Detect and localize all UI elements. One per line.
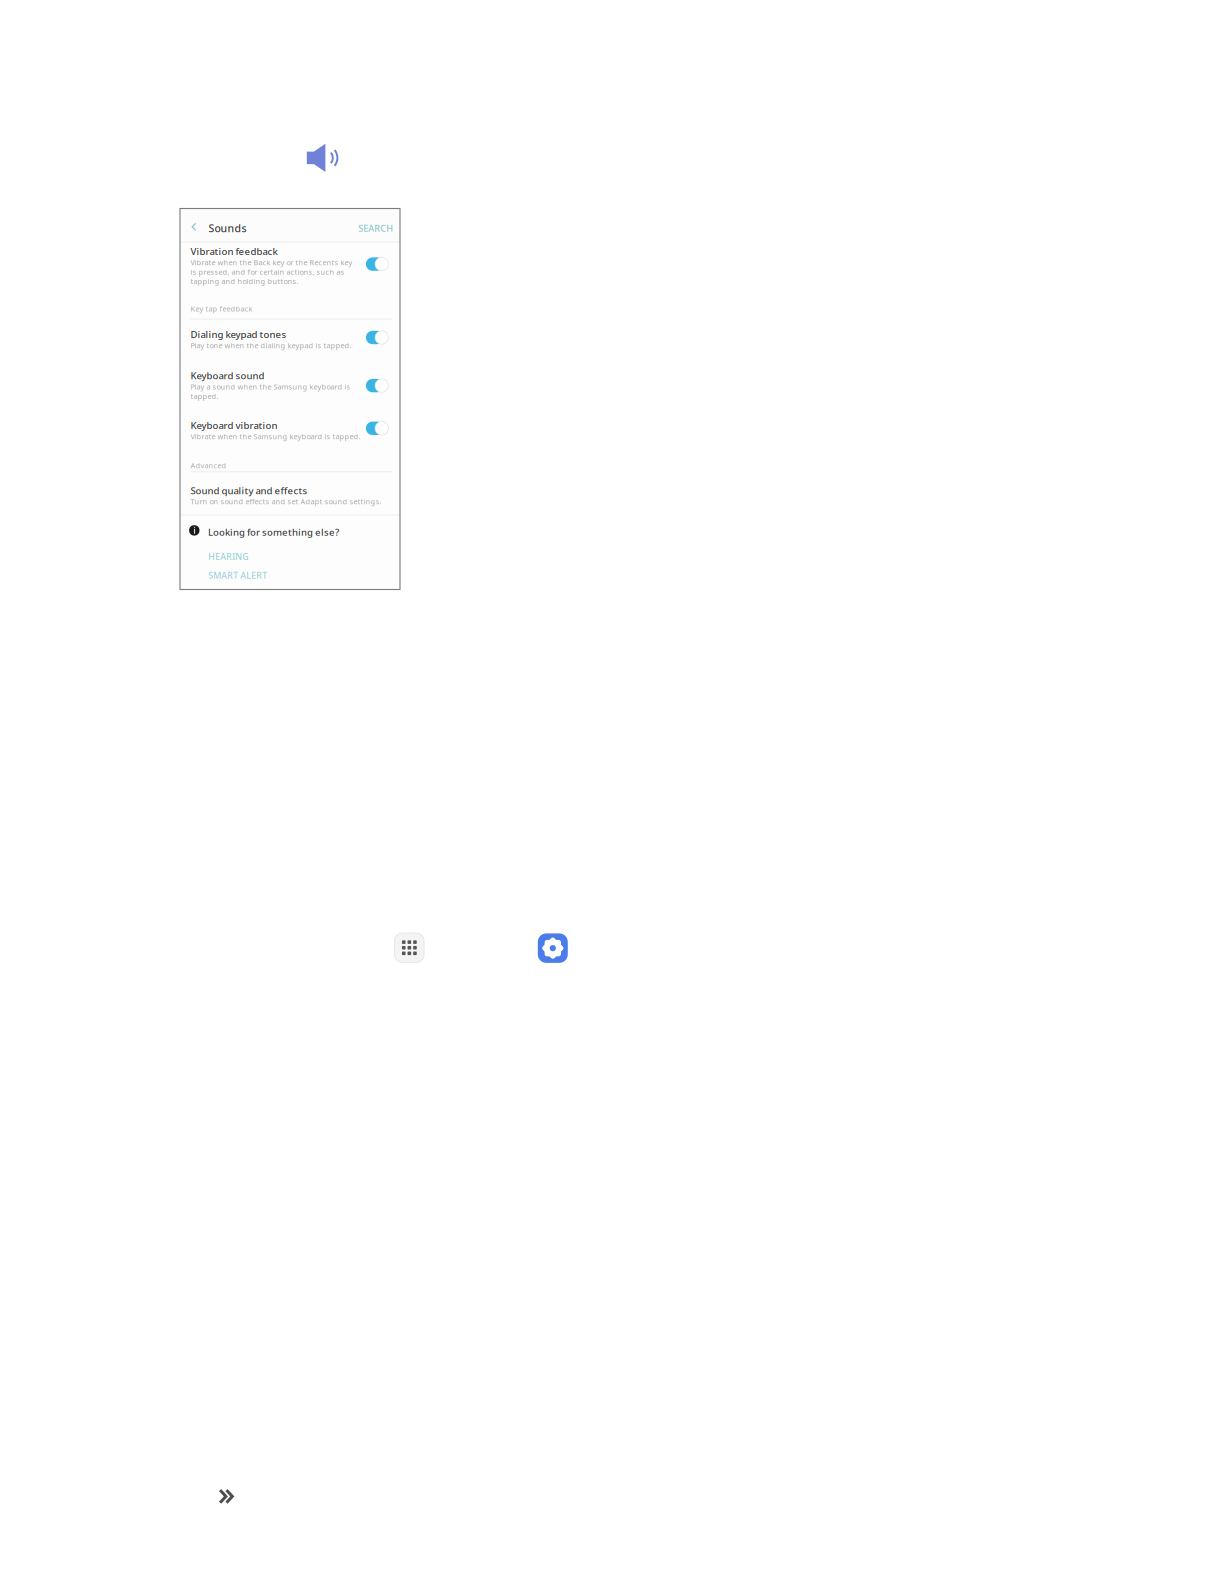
staticText: Keyboard vibration xyxy=(190,419,277,432)
staticText: Sound quality and effects xyxy=(190,484,307,497)
button[interactable]: Sounds xyxy=(202,208,262,241)
staticText: Looking for something else? xyxy=(208,525,339,538)
button[interactable]: Apps xyxy=(395,933,424,962)
staticText: Dialing keypad tones xyxy=(190,328,286,341)
button[interactable]: Dialing keypad tones xyxy=(180,208,400,589)
button[interactable]: Back xyxy=(180,208,202,241)
staticText: HEARING xyxy=(208,551,248,563)
staticText: Turn on sound effects and set Adapt soun… xyxy=(190,496,381,506)
button[interactable]: SMART ALERT xyxy=(180,565,400,581)
staticText: Key tap feedback xyxy=(190,304,252,314)
staticText: Play a sound when the Samsung keyboard i… xyxy=(190,382,350,401)
button[interactable]: Keyboard sound xyxy=(180,208,400,589)
staticText: Advanced xyxy=(190,460,226,470)
staticText: SMART ALERT xyxy=(208,569,267,581)
staticText: i xyxy=(193,524,195,536)
staticText: Vibrate when the Back key or the Recents… xyxy=(190,257,352,286)
staticText: Vibrate when the Samsung keyboard is tap… xyxy=(190,431,360,441)
button[interactable]: Vibration feedback xyxy=(180,208,400,589)
staticText: Play tone when the dialing keypad is tap… xyxy=(190,340,351,350)
button[interactable]: Sound quality and effects xyxy=(180,208,400,589)
button[interactable]: SEARCH xyxy=(348,208,400,241)
button[interactable]: HEARING xyxy=(180,547,400,563)
staticText: Sounds xyxy=(208,221,246,235)
staticText: Keyboard sound xyxy=(190,369,264,382)
staticText: SEARCH xyxy=(358,222,393,234)
staticText: Vibration feedback xyxy=(190,245,277,258)
button[interactable]: Settings xyxy=(538,933,568,963)
button[interactable]: Keyboard vibration xyxy=(180,208,400,589)
